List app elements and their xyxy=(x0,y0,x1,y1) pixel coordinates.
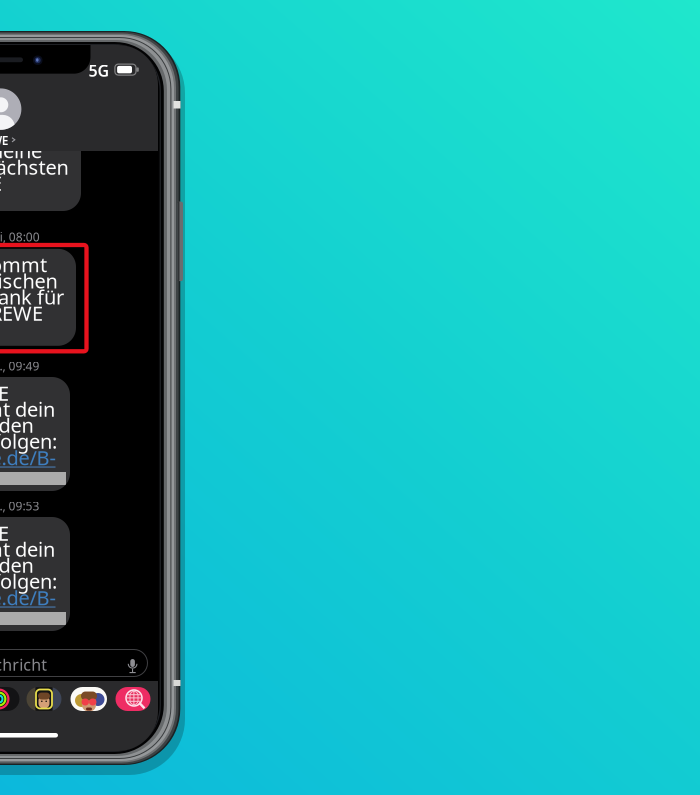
staticText: u den xyxy=(0,552,33,578)
staticText: REWE xyxy=(0,300,43,326)
staticText: 5G xyxy=(89,60,110,81)
staticText: we.de/B- xyxy=(0,584,55,611)
staticText: n Dank für xyxy=(0,283,64,310)
button[interactable]: Message field xyxy=(0,45,141,72)
staticText: VE xyxy=(0,380,9,406)
staticText: g., 09:53 xyxy=(0,498,39,514)
button[interactable]: Cellular 5G, battery full xyxy=(0,45,158,85)
staticText: VE xyxy=(0,520,9,546)
staticText: u den xyxy=(0,412,33,438)
staticText: E xyxy=(0,170,2,196)
staticText: erfolgen: xyxy=(0,568,57,594)
staticText: Nachricht xyxy=(0,654,47,675)
staticText: uli, 08:00 xyxy=(0,229,40,245)
staticText: mmt dein xyxy=(0,396,55,422)
staticText: WE xyxy=(0,132,9,148)
staticText: erfolgen: xyxy=(0,428,57,454)
button[interactable]: Conversation with REWE xyxy=(0,45,158,152)
staticText: we.de/B- xyxy=(0,444,55,471)
staticText: er nächsten xyxy=(0,154,68,180)
staticText: kommt xyxy=(0,251,47,278)
staticText: mmt dein xyxy=(0,536,55,562)
staticText: t deine xyxy=(0,137,42,164)
staticText: zwischen xyxy=(0,267,57,294)
staticText: g., 09:49 xyxy=(0,358,39,374)
